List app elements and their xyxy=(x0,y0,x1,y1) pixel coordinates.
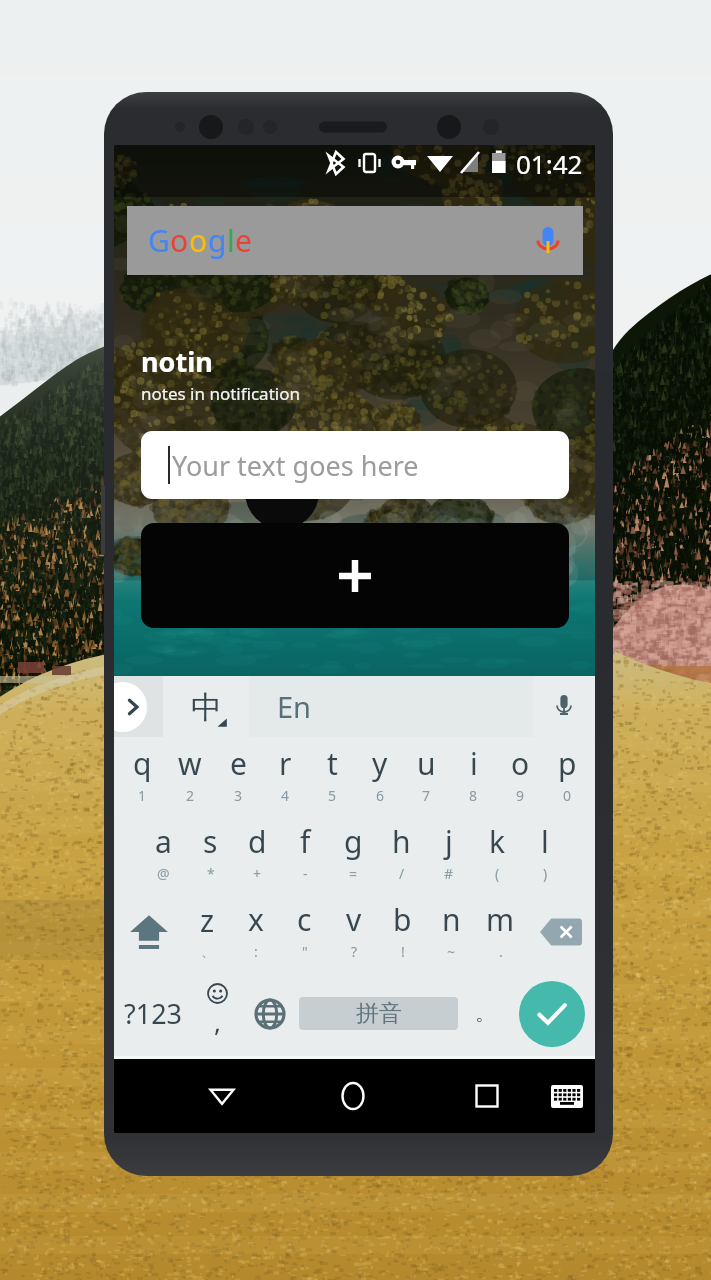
button[interactable]: g xyxy=(329,815,377,893)
staticText: Your text goes here xyxy=(172,447,419,484)
staticText: 9 xyxy=(516,786,525,805)
button[interactable]: d xyxy=(234,815,281,893)
staticText: o xyxy=(189,220,208,261)
staticText: x xyxy=(248,899,264,940)
staticText: j xyxy=(445,821,453,862)
staticText: d xyxy=(248,821,267,862)
staticText: 3 xyxy=(234,786,243,805)
button[interactable]: Shift xyxy=(114,893,183,971)
staticText: l xyxy=(227,220,235,261)
staticText: ?123 xyxy=(124,995,183,1032)
staticText: w xyxy=(178,743,202,784)
staticText: - xyxy=(303,864,308,883)
staticText: 5 xyxy=(328,786,337,805)
staticText: ~ xyxy=(447,942,456,961)
button[interactable]: w xyxy=(166,737,214,815)
button[interactable]: b xyxy=(378,893,427,971)
staticText: g xyxy=(208,220,227,261)
button[interactable]: Voice search xyxy=(531,224,565,258)
button[interactable]: c xyxy=(280,893,329,971)
button[interactable]: Your text goes here xyxy=(141,431,569,499)
button[interactable]: Voice input xyxy=(533,676,595,737)
staticText: i xyxy=(470,743,478,784)
button[interactable]: l xyxy=(521,815,569,893)
staticText: 0 xyxy=(563,786,572,805)
staticText: m xyxy=(486,899,515,940)
staticText: 拼音 xyxy=(356,999,402,1028)
staticText: h xyxy=(392,821,411,862)
staticText: 01:42 xyxy=(516,146,583,181)
staticText: o xyxy=(511,743,530,784)
staticText: u xyxy=(417,743,436,784)
button[interactable]: n xyxy=(427,893,476,971)
button[interactable]: a xyxy=(140,815,187,893)
staticText: 7 xyxy=(422,786,431,805)
staticText: " xyxy=(302,942,308,961)
button[interactable]: m xyxy=(476,893,525,971)
button[interactable]: 拼音 xyxy=(299,997,458,1030)
staticText: b xyxy=(393,899,412,940)
staticText: v xyxy=(346,899,362,940)
button[interactable]: j xyxy=(425,815,473,893)
button[interactable]: Expand toolbar xyxy=(114,682,147,732)
staticText: l xyxy=(541,821,549,862)
button[interactable]: q xyxy=(118,737,166,815)
button[interactable]: En xyxy=(249,676,533,737)
staticText: y xyxy=(372,743,388,784)
button[interactable]: f xyxy=(281,815,329,893)
button[interactable]: 。 xyxy=(461,971,509,1056)
staticText: 4 xyxy=(281,786,290,805)
button[interactable]: k xyxy=(473,815,521,893)
button[interactable]: Home xyxy=(329,1059,377,1133)
button[interactable]: v xyxy=(329,893,378,971)
staticText: * xyxy=(207,864,215,883)
button[interactable]: Switch keyboard xyxy=(543,1059,591,1133)
button[interactable]: x xyxy=(231,893,280,971)
staticText: ! xyxy=(401,942,405,961)
staticText: # xyxy=(444,864,454,883)
staticText: : xyxy=(254,942,258,961)
staticText: t xyxy=(327,743,338,784)
button[interactable]: e xyxy=(214,737,262,815)
staticText: 2 xyxy=(186,786,195,805)
staticText: . xyxy=(499,942,503,961)
button[interactable]: Back xyxy=(198,1059,246,1133)
staticText: s xyxy=(203,821,218,862)
staticText: 8 xyxy=(469,786,478,805)
button[interactable]: o xyxy=(497,737,544,815)
button[interactable]: y xyxy=(356,737,403,815)
button[interactable]: Enter xyxy=(519,981,585,1047)
button[interactable]: Add note xyxy=(141,523,569,628)
staticText: ? xyxy=(351,942,358,961)
button[interactable]: Change language xyxy=(243,971,296,1056)
button[interactable]: i xyxy=(450,737,497,815)
staticText: r xyxy=(279,743,292,784)
button[interactable]: p xyxy=(544,737,591,815)
staticText: q xyxy=(133,743,152,784)
staticText: / xyxy=(399,864,405,883)
button[interactable]: h xyxy=(377,815,425,893)
staticText: o xyxy=(170,220,189,261)
staticText: e xyxy=(230,743,247,784)
button[interactable]: r xyxy=(262,737,309,815)
button[interactable]: t xyxy=(309,737,356,815)
staticText: 6 xyxy=(376,786,385,805)
button[interactable]: s xyxy=(187,815,234,893)
button[interactable]: G xyxy=(127,206,583,275)
button[interactable]: Recent apps xyxy=(463,1059,511,1133)
staticText: 中 xyxy=(191,688,222,727)
button[interactable]: u xyxy=(403,737,450,815)
staticText: ( xyxy=(495,864,500,883)
staticText: , xyxy=(214,1004,221,1039)
staticText: c xyxy=(297,899,312,940)
button[interactable]: z xyxy=(183,893,231,971)
staticText: p xyxy=(558,743,577,784)
staticText: ) xyxy=(543,864,548,883)
staticText: 。 xyxy=(475,1001,495,1026)
button[interactable]: 中 xyxy=(163,676,249,737)
staticText: k xyxy=(489,821,506,862)
button[interactable]: Backspace xyxy=(525,893,595,971)
button[interactable]: Emoji xyxy=(192,971,243,1056)
staticText: 、 xyxy=(201,943,215,961)
button[interactable]: ?123 xyxy=(114,971,192,1056)
